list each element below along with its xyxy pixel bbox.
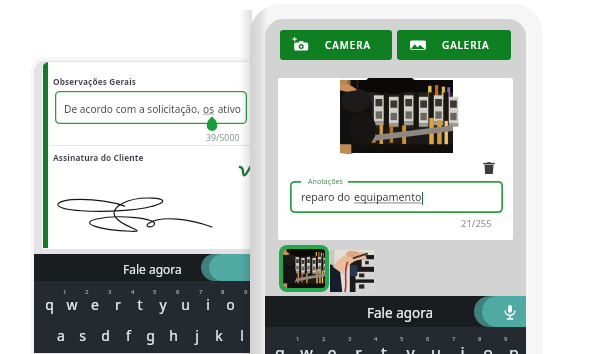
button[interactable]: Excluir foto: [477, 156, 501, 180]
staticText: o: [483, 342, 493, 354]
button[interactable]: t: [128, 295, 151, 319]
button[interactable]: Falar: [209, 254, 255, 281]
staticText: 8: [221, 288, 225, 296]
staticText: Fale agora: [367, 304, 434, 322]
button[interactable]: [330, 250, 374, 292]
button[interactable]: i: [449, 342, 475, 354]
staticText: h: [169, 326, 178, 345]
button[interactable]: u: [174, 295, 197, 319]
button[interactable]: e: [319, 342, 345, 354]
staticText: 4: [131, 288, 135, 296]
button[interactable]: [279, 245, 329, 292]
staticText: De acordo com a solicitação,: [64, 102, 203, 116]
staticText: Observações Gerais: [53, 76, 137, 87]
staticText: t: [137, 295, 143, 314]
staticText: i: [206, 295, 210, 314]
staticText: q: [45, 295, 54, 314]
staticText: p: [509, 342, 519, 354]
staticText: os: [203, 102, 215, 116]
staticText: l: [240, 326, 244, 345]
button[interactable]: Anotações: [290, 181, 503, 213]
button[interactable]: Falar: [482, 296, 526, 327]
staticText: 5: [400, 335, 404, 343]
staticText: 2: [85, 288, 89, 296]
staticText: w: [66, 295, 78, 314]
staticText: i: [460, 342, 465, 354]
button[interactable]: p: [501, 342, 526, 354]
staticText: 21/255: [461, 217, 492, 230]
button[interactable]: k: [207, 326, 230, 350]
staticText: 1: [63, 288, 67, 296]
staticText: 5: [153, 288, 157, 296]
button[interactable]: d: [94, 326, 117, 350]
staticText: Assinatura do Cliente: [53, 152, 144, 163]
staticText: r: [355, 342, 362, 354]
staticText: r: [115, 295, 121, 314]
button[interactable]: q: [267, 342, 293, 354]
staticText: 8: [478, 335, 482, 343]
staticText: 9: [244, 288, 248, 296]
staticText: e: [91, 295, 99, 314]
button[interactable]: q: [38, 295, 61, 319]
button[interactable]: h: [162, 326, 185, 350]
staticText: k: [215, 326, 223, 345]
button[interactable]: w: [60, 295, 83, 319]
staticText: g: [146, 326, 155, 345]
staticText: d: [101, 326, 110, 345]
button[interactable]: u: [423, 342, 449, 354]
staticText: 6: [176, 288, 180, 296]
staticText: 3: [348, 335, 352, 343]
button[interactable]: w: [293, 342, 319, 354]
staticText: 3: [108, 288, 112, 296]
button[interactable]: j: [185, 326, 208, 350]
button[interactable]: g: [139, 326, 162, 350]
staticText: j: [195, 326, 199, 345]
button[interactable]: CAMERA: [280, 30, 392, 60]
staticText: ativo: [215, 102, 242, 116]
staticText: 2: [322, 335, 326, 343]
other: Assinado: [239, 162, 253, 176]
button[interactable]: De acordo com a solicitação,: [55, 91, 247, 124]
button[interactable]: y: [151, 295, 174, 319]
staticText: 4: [374, 335, 378, 343]
staticText: q: [275, 342, 285, 354]
button[interactable]: r: [106, 295, 129, 319]
staticText: 7: [452, 335, 456, 343]
staticText: y: [406, 342, 415, 354]
button[interactable]: y: [397, 342, 423, 354]
staticText: e: [327, 342, 337, 354]
button[interactable]: s: [71, 326, 94, 350]
staticText: s: [79, 326, 86, 345]
button[interactable]: o: [219, 295, 242, 319]
button[interactable]: t: [371, 342, 397, 354]
button[interactable]: a: [49, 326, 72, 350]
staticText: 1: [296, 335, 300, 343]
staticText: a: [57, 326, 65, 345]
staticText: t: [381, 342, 387, 354]
staticText: f: [126, 326, 131, 345]
button[interactable]: f: [117, 326, 140, 350]
staticText: 7: [199, 288, 203, 296]
staticText: o: [226, 295, 235, 314]
button[interactable]: e: [83, 295, 106, 319]
button[interactable]: r: [345, 342, 371, 354]
staticText: Anotações: [308, 176, 343, 186]
button[interactable]: o: [475, 342, 501, 354]
staticText: y: [159, 295, 167, 314]
button[interactable]: i: [196, 295, 219, 319]
button[interactable]: l: [230, 326, 253, 350]
staticText: GALERIA: [442, 38, 490, 52]
staticText: u: [431, 342, 441, 354]
staticText: 6: [426, 335, 430, 343]
staticText: CAMERA: [325, 38, 371, 52]
staticText: w: [300, 342, 313, 354]
staticText: equipamento: [354, 190, 422, 205]
staticText: u: [181, 295, 190, 314]
staticText: Fale agora: [123, 261, 182, 277]
button[interactable]: GALERIA: [397, 30, 511, 60]
staticText: 9: [504, 335, 508, 343]
staticText: reparo do: [301, 190, 354, 205]
staticText: 39/5000: [206, 132, 240, 144]
